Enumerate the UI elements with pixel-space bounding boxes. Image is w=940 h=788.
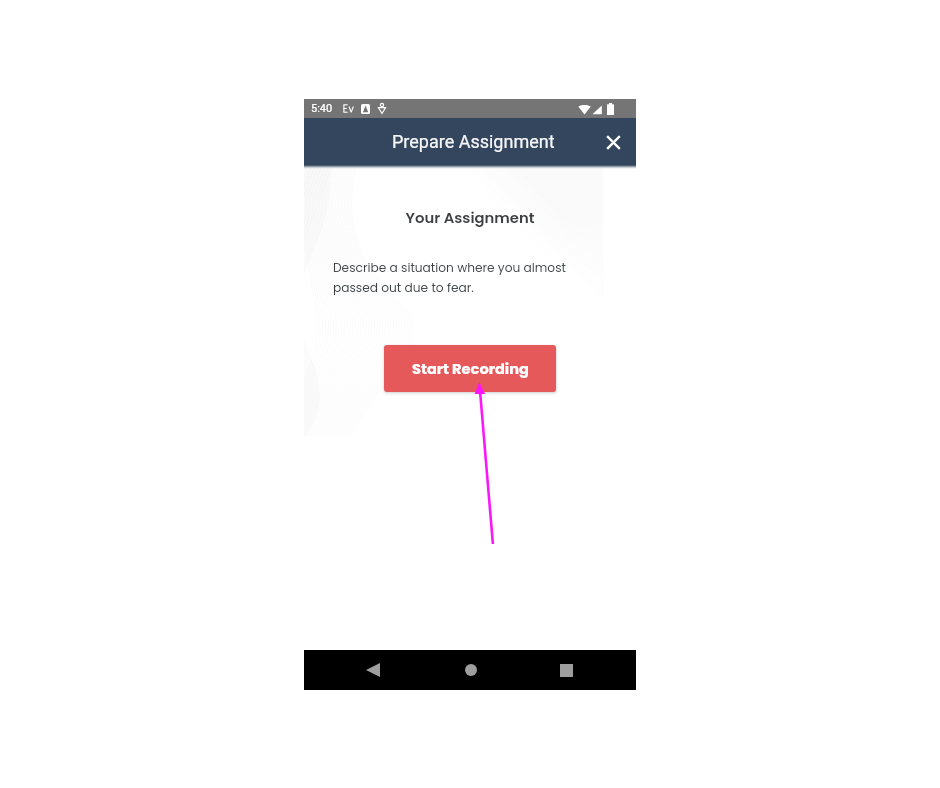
button[interactable]: Close <box>595 124 631 160</box>
button[interactable]: Recent apps <box>542 650 590 690</box>
button[interactable]: Prepare Assignment <box>392 131 555 152</box>
button[interactable]: Start Recording <box>384 345 556 392</box>
staticText: Prepare Assignment <box>392 131 555 152</box>
button[interactable]: Back <box>349 650 397 690</box>
staticText: Your Assignment <box>304 207 636 228</box>
staticText: Describe a situation where you almost pa… <box>333 259 607 297</box>
staticText: 5:40 <box>311 102 333 115</box>
button[interactable]: Home <box>447 650 495 690</box>
staticText: Start Recording <box>412 359 529 379</box>
